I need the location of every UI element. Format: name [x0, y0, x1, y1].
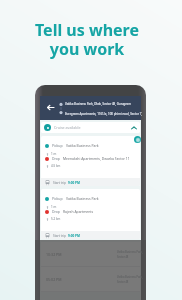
staticText: Cruise available	[54, 125, 81, 130]
staticText: Vatika Business Park,	[117, 275, 143, 279]
staticText: Sector 48	[117, 255, 129, 259]
staticText: Vatika Business Park	[66, 143, 99, 148]
staticText: Vatika Business Park,	[117, 250, 143, 254]
staticText: Vatika Business Park, Dlwk, Sector 48, G…	[65, 102, 131, 106]
staticText: Rajesh Apartments	[63, 209, 94, 214]
staticText: Vatika Business Park	[66, 196, 99, 201]
staticText: 5.2 km	[51, 217, 61, 221]
button[interactable]: Back	[44, 101, 56, 113]
staticText: Meenakshi Apartments, Dwarka Sector 11 (…	[63, 156, 140, 161]
staticText: Drop	[52, 156, 60, 161]
staticText: 10:32 PM	[46, 252, 62, 257]
staticText: Pickup	[52, 196, 63, 201]
button[interactable]: Pickup	[41, 136, 140, 186]
staticText: Start trip	[53, 181, 66, 185]
button[interactable]: Cruise available	[41, 122, 140, 133]
staticText: Evergreen Apartments, 1161/a, 100 phirni…	[65, 112, 143, 116]
staticText: Sector 48	[117, 280, 129, 284]
staticText: Start trip	[53, 234, 66, 238]
staticText: Drop	[52, 209, 60, 214]
staticText: 4.5 km	[51, 164, 61, 168]
staticText: Tell us where you work	[35, 19, 139, 60]
staticText: 05:02 PM	[46, 277, 62, 282]
button[interactable]: My location	[134, 136, 141, 143]
staticText: 9:00 PM	[68, 181, 80, 185]
staticText: 1 m	[51, 152, 57, 156]
staticText: 1 m	[51, 205, 57, 209]
staticText: 9:00 PM	[68, 234, 80, 238]
staticText: Pickup	[52, 143, 63, 148]
button[interactable]: Pickup	[41, 189, 140, 239]
